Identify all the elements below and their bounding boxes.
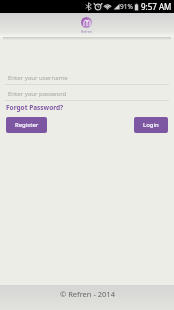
staticText: © Refren - 2014 — [60, 289, 115, 299]
button[interactable]: Forgot Password? — [5, 103, 65, 112]
staticText: Enter your username — [8, 74, 68, 82]
staticText: 9:57 AM — [141, 1, 172, 12]
button[interactable]: Login — [134, 117, 168, 133]
staticText: Login — [143, 121, 159, 129]
staticText: Enter your password — [8, 90, 67, 98]
staticText: Register — [15, 121, 39, 129]
staticText: Forgot Password? — [6, 103, 64, 112]
button[interactable]: Enter your password — [8, 88, 174, 100]
button[interactable]: Register — [6, 117, 47, 133]
button[interactable]: Refren home — [81, 17, 92, 34]
staticText: Refren — [81, 29, 92, 34]
button[interactable]: Enter your username — [8, 72, 174, 84]
staticText: 91% — [120, 2, 133, 11]
